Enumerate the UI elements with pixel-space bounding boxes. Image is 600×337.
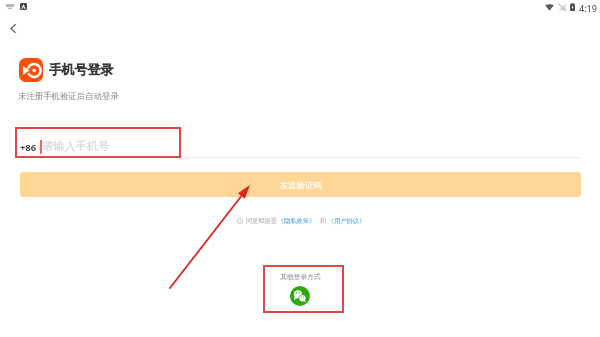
staticText: 同意即接受 [246,217,277,225]
staticText: 未注册手机验证后自动登录 [18,91,119,102]
button[interactable]: Back [2,17,24,39]
staticText: 其他登录方式 [280,272,321,281]
staticText: 4:19 [579,2,597,14]
button[interactable]: 同意即接受 [237,215,366,227]
staticText: 《用户协议》 [328,217,366,225]
button[interactable]: Phone number input [20,133,560,155]
staticText: +86 [20,141,37,154]
button[interactable]: 发送验证码 [20,172,581,197]
staticText: 发送验证码 [280,180,322,190]
staticText: 《隐私政策》 [278,217,316,225]
staticText: 请输入手机号 [42,139,110,153]
staticText: 和 [320,217,327,225]
button[interactable]: WeChat login [290,286,310,306]
staticText: 手机号登录 [49,62,113,78]
